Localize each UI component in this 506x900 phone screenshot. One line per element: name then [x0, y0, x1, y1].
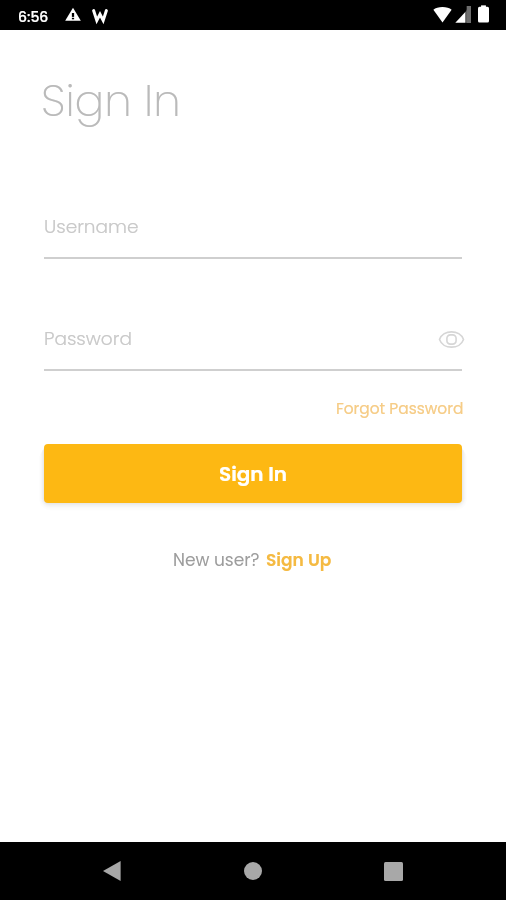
staticText: Sign In [41, 70, 181, 132]
button[interactable]: Username [44, 208, 462, 259]
staticText: Sign In [219, 460, 288, 488]
button[interactable]: Sign Up [265, 542, 333, 578]
staticText: Forgot Password [336, 398, 464, 418]
button[interactable]: Show password [436, 328, 466, 350]
staticText: 6:56 [18, 7, 49, 27]
staticText: Password [44, 326, 132, 352]
button[interactable]: Back [88, 847, 136, 895]
staticText: New user? [173, 548, 265, 572]
button[interactable]: Home [229, 847, 277, 895]
button[interactable]: Sign In [44, 444, 462, 503]
button[interactable]: Password [44, 320, 462, 371]
button[interactable]: Forgot Password [334, 392, 466, 424]
staticText: Username [44, 214, 139, 240]
staticText: Sign Up [266, 548, 332, 572]
button[interactable]: Recent apps [369, 847, 417, 895]
